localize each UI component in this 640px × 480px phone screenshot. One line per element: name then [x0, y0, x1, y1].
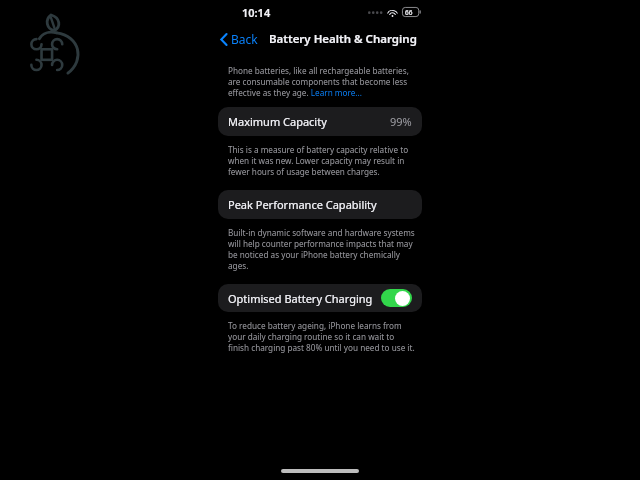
- staticText: Peak Performance Capability: [228, 197, 377, 212]
- staticText: Optimised Battery Charging: [228, 291, 373, 306]
- button[interactable]: Optimised Battery Charging: [218, 284, 422, 312]
- staticText: To reduce battery ageing, iPhone learns …: [228, 320, 416, 353]
- staticText: This is a measure of battery capacity re…: [228, 144, 416, 177]
- staticText: 99%: [390, 114, 412, 129]
- staticText: Battery Health & Charging: [269, 31, 417, 47]
- staticText: Maximum Capacity: [228, 114, 327, 129]
- button[interactable]: Back: [218, 28, 260, 50]
- staticText: Phone batteries, like all rechargeable b…: [228, 65, 416, 98]
- button[interactable]: Optimised Battery Charging toggle, on: [381, 289, 412, 307]
- staticText: 66: [405, 8, 413, 17]
- other: Apple command logo: [22, 8, 84, 78]
- button[interactable]: Maximum Capacity: [218, 107, 422, 136]
- staticText: Back: [231, 31, 258, 47]
- button[interactable]: Peak Performance Capability: [218, 190, 422, 219]
- staticText: 10:14: [242, 5, 271, 20]
- staticText: Built-in dynamic software and hardware s…: [228, 227, 416, 271]
